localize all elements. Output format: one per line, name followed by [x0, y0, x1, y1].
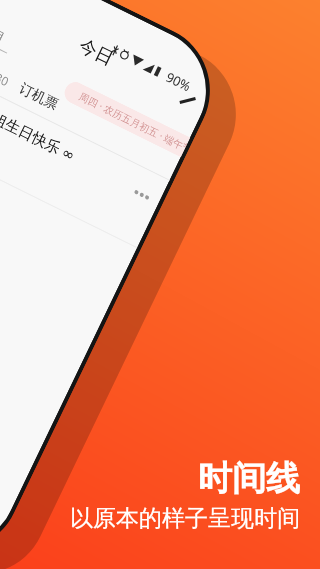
staticText: 六月	[0, 21, 7, 45]
staticText: 时间线	[198, 457, 300, 500]
staticText: 09:30	[0, 61, 12, 89]
staticText: 周四 · 农历五月初五 · 端午节	[77, 89, 188, 154]
button[interactable]: 周四 · 农历五月初五 · 端午节	[61, 78, 190, 157]
staticText: 以原本的样子呈现时间	[70, 504, 300, 533]
staticText: 90%	[163, 68, 194, 95]
button[interactable]: 黄小姐生日快乐 ∞	[0, 94, 79, 165]
staticText: 订机票	[16, 80, 61, 114]
button[interactable]: 今日	[75, 34, 117, 71]
button[interactable]: 09:30	[0, 58, 182, 176]
staticText: 今日	[75, 34, 117, 71]
button[interactable]: More options	[130, 184, 154, 205]
button[interactable]: Edit	[177, 89, 199, 111]
